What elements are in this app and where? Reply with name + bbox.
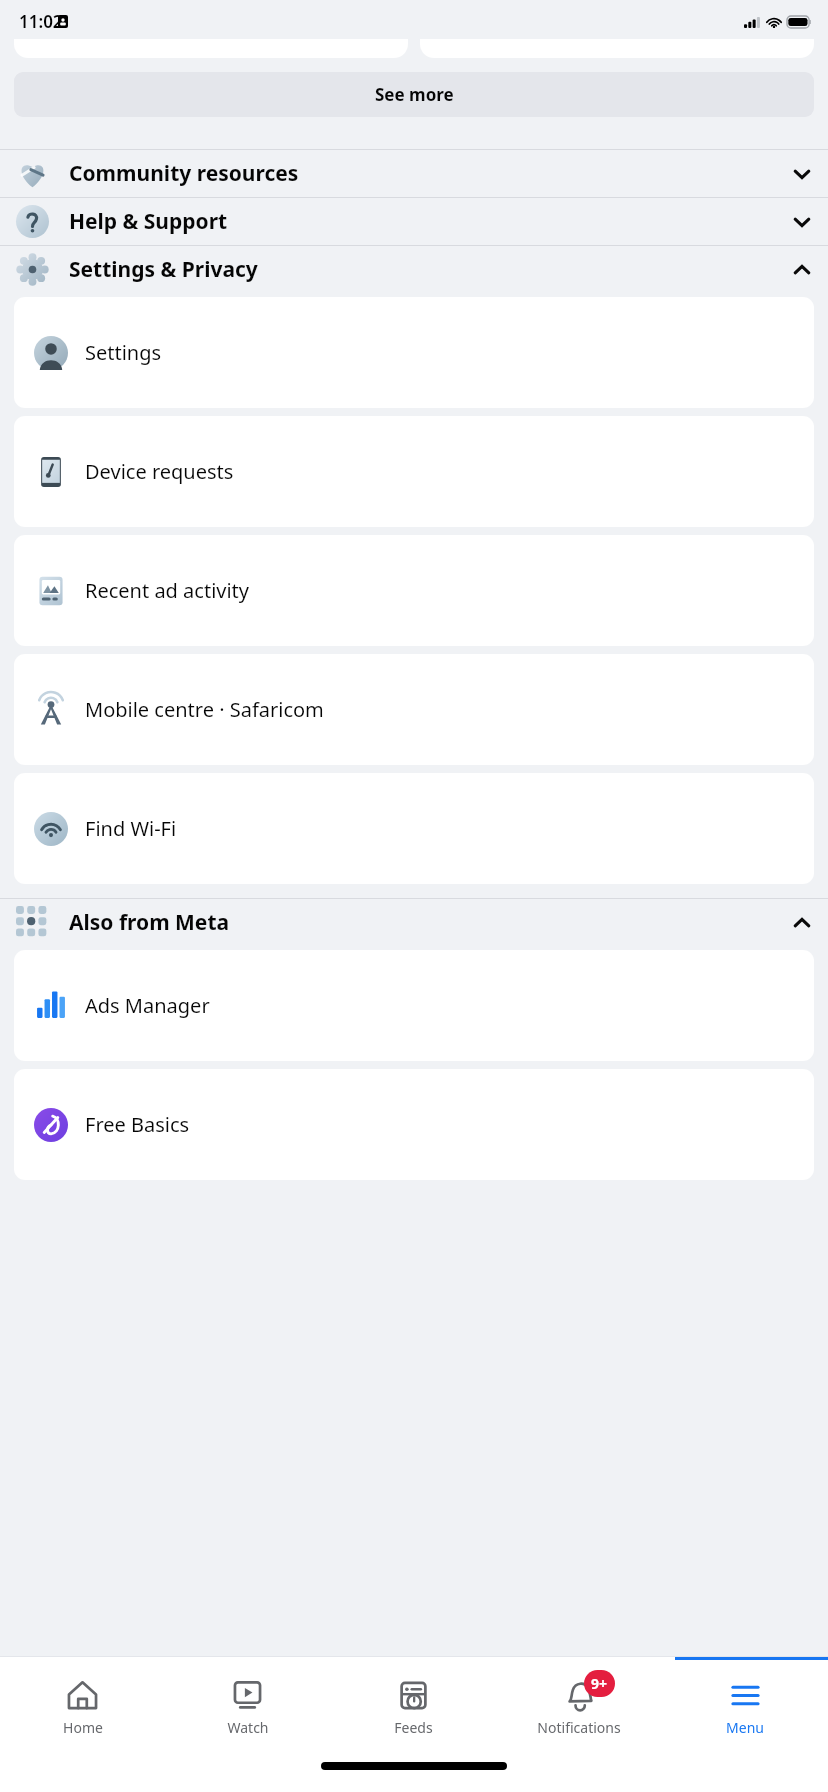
other: Watch bbox=[231, 1679, 264, 1712]
button[interactable]: Device requests bbox=[14, 416, 814, 527]
staticText: Feeds bbox=[394, 1718, 433, 1737]
staticText: Help & Support bbox=[69, 207, 228, 236]
other: Notifications bbox=[563, 1679, 596, 1712]
staticText: 11:02 bbox=[19, 10, 63, 33]
other: Menu bbox=[729, 1679, 762, 1712]
other: Feeds bbox=[397, 1679, 430, 1712]
button[interactable]: See more bbox=[14, 72, 814, 117]
staticText: Device requests bbox=[85, 458, 234, 485]
button[interactable]: Help & Support bbox=[0, 198, 828, 245]
button[interactable]: Home bbox=[0, 1660, 165, 1756]
staticText: Home bbox=[63, 1718, 103, 1737]
button[interactable]: Community resources bbox=[0, 150, 828, 197]
staticText: Find Wi-Fi bbox=[85, 815, 177, 842]
button[interactable]: Menu bbox=[662, 1660, 828, 1756]
staticText: Ads Manager bbox=[85, 992, 210, 1019]
staticText: Settings & Privacy bbox=[69, 255, 258, 284]
staticText: Community resources bbox=[69, 159, 299, 188]
staticText: Menu bbox=[726, 1718, 764, 1737]
button[interactable]: Ads Manager bbox=[14, 950, 814, 1061]
staticText: Free Basics bbox=[85, 1111, 190, 1138]
button[interactable]: Watch bbox=[165, 1660, 330, 1756]
staticText: Notifications bbox=[537, 1718, 621, 1737]
other: Home bbox=[66, 1679, 99, 1712]
staticText: Recent ad activity bbox=[85, 577, 250, 604]
button[interactable]: Also from Meta bbox=[0, 899, 828, 946]
staticText: Also from Meta bbox=[69, 908, 230, 937]
button[interactable]: Feeds bbox=[330, 1660, 496, 1756]
button[interactable]: Recent ad activity bbox=[14, 535, 814, 646]
staticText: Watch bbox=[227, 1718, 269, 1737]
staticText: See more bbox=[375, 83, 454, 106]
button[interactable]: Settings bbox=[14, 297, 814, 408]
staticText: 9+ bbox=[591, 1674, 608, 1693]
button[interactable]: Free Basics bbox=[14, 1069, 814, 1180]
button[interactable]: Notifications bbox=[496, 1660, 662, 1756]
button[interactable]: Mobile centre · Safaricom bbox=[14, 654, 814, 765]
staticText: Mobile centre · Safaricom bbox=[85, 696, 324, 723]
button[interactable]: Settings & Privacy bbox=[0, 246, 828, 293]
button[interactable]: Find Wi-Fi bbox=[14, 773, 814, 884]
staticText: Settings bbox=[85, 339, 162, 366]
